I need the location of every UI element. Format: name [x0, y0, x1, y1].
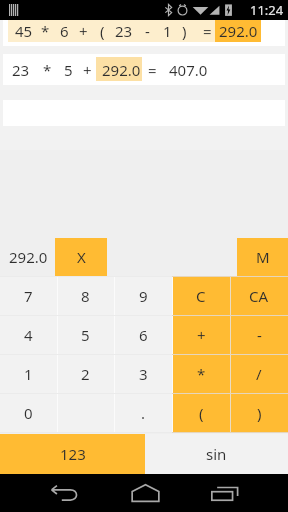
button[interactable]: 6: [114, 316, 172, 354]
button[interactable]: sin: [145, 434, 288, 474]
staticText: /: [256, 364, 262, 384]
staticText: ): [257, 403, 262, 423]
staticText: 292.0: [219, 21, 258, 41]
button[interactable]: .: [114, 394, 172, 432]
staticText: =: [148, 60, 157, 80]
staticText: 2: [81, 364, 90, 384]
staticText: 6: [139, 325, 148, 345]
button[interactable]: 3: [114, 355, 172, 393]
button[interactable]: *: [172, 355, 230, 393]
button[interactable]: -: [230, 316, 288, 354]
button[interactable]: /: [230, 355, 288, 393]
staticText: 5: [64, 60, 73, 80]
staticText: 292.0: [102, 60, 141, 80]
staticText: 23: [115, 21, 133, 41]
button[interactable]: C: [172, 277, 230, 315]
staticText: 9: [139, 286, 148, 306]
staticText: 23: [12, 60, 30, 80]
staticText: 292.0: [9, 247, 48, 267]
staticText: 6: [60, 21, 69, 41]
button[interactable]: ): [230, 394, 288, 432]
button[interactable]: Back: [40, 474, 88, 512]
staticText: X: [77, 247, 86, 267]
button[interactable]: 9: [114, 277, 172, 315]
staticText: -: [257, 325, 262, 345]
staticText: 0: [24, 403, 33, 423]
staticText: +: [197, 325, 206, 345]
button[interactable]: Home: [121, 474, 169, 512]
staticText: 1: [163, 21, 172, 41]
staticText: +: [83, 60, 92, 80]
button[interactable]: 5: [57, 316, 114, 354]
staticText: 8: [81, 286, 90, 306]
staticText: -: [145, 21, 150, 41]
staticText: 407.0: [169, 60, 208, 80]
staticText: *: [41, 21, 50, 41]
button[interactable]: 23: [3, 54, 285, 85]
staticText: 123: [60, 444, 86, 464]
staticText: 45: [15, 21, 33, 41]
button[interactable]: 4: [0, 316, 57, 354]
staticText: CA: [249, 286, 269, 306]
staticText: (: [100, 21, 105, 41]
button[interactable]: M: [237, 238, 288, 276]
button[interactable]: Recents: [201, 474, 249, 512]
staticText: *: [43, 60, 52, 80]
button[interactable]: 8: [57, 277, 114, 315]
staticText: +: [79, 21, 88, 41]
staticText: ): [182, 21, 187, 41]
button[interactable]: 123: [0, 434, 145, 474]
button[interactable]: 0: [0, 394, 57, 432]
button[interactable]: (: [172, 394, 230, 432]
button[interactable]: 2: [57, 355, 114, 393]
staticText: 5: [81, 325, 90, 345]
button[interactable]: X: [55, 238, 107, 276]
staticText: 11:24: [250, 1, 284, 19]
staticText: M: [256, 247, 270, 267]
staticText: 7: [24, 286, 33, 306]
staticText: 1: [24, 364, 33, 384]
staticText: =: [203, 21, 212, 41]
button[interactable]: +: [172, 316, 230, 354]
button[interactable]: 7: [0, 277, 57, 315]
staticText: sin: [206, 444, 227, 464]
staticText: .: [141, 403, 146, 423]
staticText: 4: [24, 325, 33, 345]
button[interactable]: 45: [3, 20, 285, 46]
staticText: (: [199, 403, 204, 423]
staticText: C: [196, 286, 206, 306]
button[interactable]: 1: [0, 355, 57, 393]
staticText: 3: [139, 364, 148, 384]
staticText: *: [197, 364, 206, 384]
button[interactable]: CA: [230, 277, 288, 315]
